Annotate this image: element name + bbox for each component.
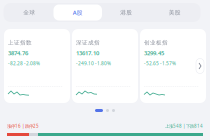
staticText: 3874.76 <box>8 49 28 57</box>
button[interactable]: More indices <box>195 57 205 75</box>
staticText: 上证指数 <box>8 39 32 46</box>
staticText: A股 <box>73 9 83 16</box>
staticText: 港股 <box>120 9 132 16</box>
button[interactable]: 全球 <box>5 4 53 20</box>
button[interactable]: 深证成指 <box>72 29 138 103</box>
staticText: -249.10 -1.80% <box>76 60 111 66</box>
button[interactable]: 美股 <box>150 4 199 20</box>
staticText: 13617.10 <box>76 49 99 57</box>
button[interactable]: A股 <box>53 4 102 20</box>
button[interactable]: 创业板指 <box>140 29 206 103</box>
staticText: -82.28 -2.08% <box>8 60 40 66</box>
staticText: 深证成指 <box>76 39 100 46</box>
button[interactable]: 上证指数 <box>4 29 70 103</box>
staticText: 创业板指 <box>144 39 168 46</box>
staticText: 上涨548 | 下跌814 <box>165 123 203 129</box>
staticText: 3299.45 <box>144 49 164 57</box>
staticText: 美股 <box>169 9 181 16</box>
staticText: 全球 <box>23 9 35 16</box>
button[interactable]: 港股 <box>102 4 150 20</box>
staticText: 涨停16 | 跌停25 <box>7 123 39 129</box>
staticText: -52.65 -1.57% <box>144 60 176 66</box>
